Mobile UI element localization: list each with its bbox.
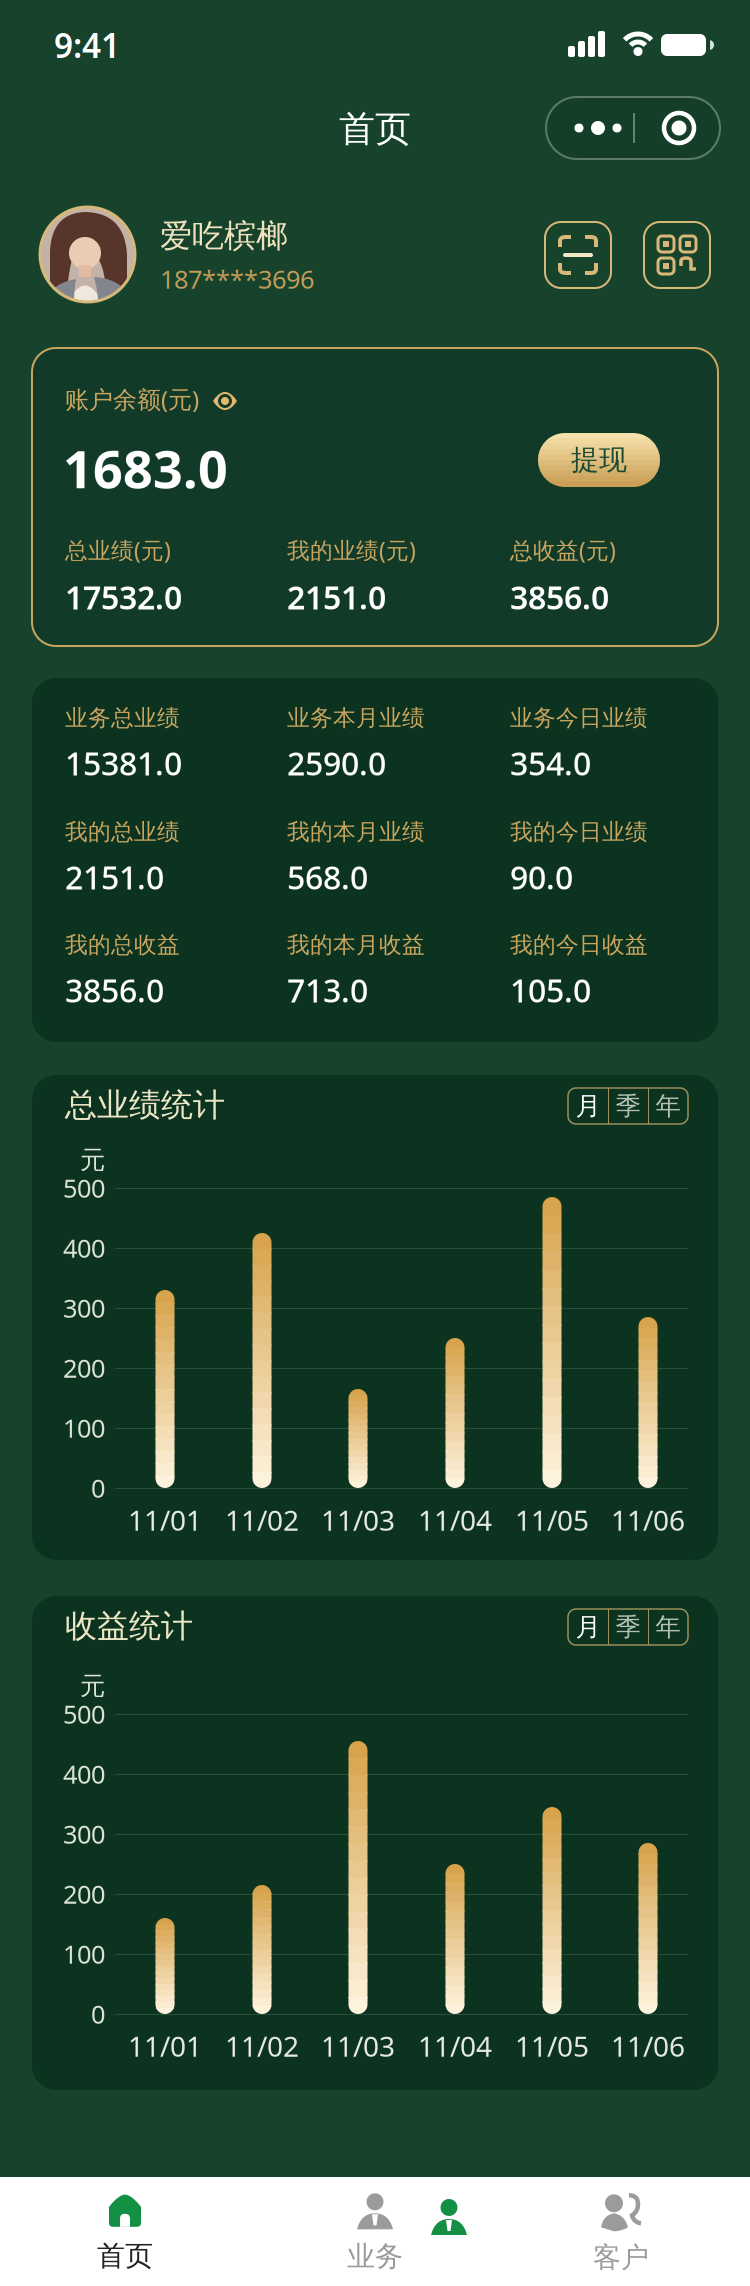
staticText: 3856.0 [510, 576, 609, 618]
staticText: 业务今日业绩 [510, 704, 648, 732]
staticText: 首页 [97, 2239, 153, 2273]
staticText: 2151.0 [287, 576, 386, 618]
staticText: 11/05 [515, 2027, 589, 2065]
staticText: 9:41 [54, 23, 120, 67]
button[interactable]: 月 [568, 1609, 608, 1645]
staticText: 11/02 [225, 2027, 299, 2065]
button[interactable]: 业务 [419, 2187, 479, 2247]
staticText: 11/06 [611, 2027, 685, 2065]
staticText: 11/01 [128, 2027, 202, 2065]
staticText: 100 [63, 1411, 105, 1445]
staticText: 400 [63, 1757, 105, 1791]
staticText: 500 [63, 1171, 105, 1205]
staticText: 我的今日业绩 [510, 818, 648, 846]
staticText: 3856.0 [65, 969, 164, 1011]
staticText: 我的总收益 [65, 931, 180, 959]
button[interactable]: 年 [648, 1088, 688, 1124]
staticText: 业务本月业绩 [287, 704, 425, 732]
staticText: 月 [575, 1090, 600, 1121]
button[interactable]: 首页 [55, 2183, 195, 2283]
staticText: 0 [91, 1471, 105, 1505]
button[interactable]: 更多 [546, 97, 632, 159]
staticText: 11/01 [128, 1501, 202, 1539]
button[interactable]: 提现 [538, 433, 660, 487]
staticText: 11/04 [418, 2027, 492, 2065]
staticText: 2151.0 [65, 856, 164, 898]
staticText: 我的本月收益 [287, 931, 425, 959]
staticText: 0 [91, 1997, 105, 2031]
staticText: 200 [63, 1351, 105, 1385]
staticText: 首页 [339, 107, 411, 151]
button[interactable]: 季 [608, 1609, 648, 1645]
button[interactable]: 客户 [551, 2183, 691, 2283]
staticText: 11/05 [515, 1501, 589, 1539]
staticText: 总收益(元) [510, 535, 616, 565]
staticText: 季 [615, 1090, 640, 1121]
staticText: 354.0 [510, 742, 591, 784]
staticText: 400 [63, 1231, 105, 1265]
staticText: 11/04 [418, 1501, 492, 1539]
staticText: 业务总业绩 [65, 704, 180, 732]
staticText: 季 [615, 1611, 640, 1642]
staticText: 我的今日收益 [510, 931, 648, 959]
staticText: 90.0 [510, 856, 573, 898]
staticText: 1683.0 [63, 433, 228, 503]
staticText: 11/03 [321, 2027, 395, 2065]
staticText: 300 [63, 1291, 105, 1325]
staticText: 爱吃槟榔 [160, 216, 288, 256]
staticText: 105.0 [510, 969, 591, 1011]
staticText: 年 [655, 1611, 680, 1642]
button[interactable]: 扫一扫 [545, 222, 611, 288]
staticText: 200 [63, 1877, 105, 1911]
button[interactable]: 业务 [305, 2183, 445, 2283]
staticText: 我的本月业绩 [287, 818, 425, 846]
button[interactable]: 月 [568, 1088, 608, 1124]
staticText: 500 [63, 1697, 105, 1731]
staticText: 年 [655, 1090, 680, 1121]
staticText: 11/06 [611, 1501, 685, 1539]
staticText: 收益统计 [65, 1606, 193, 1646]
staticText: 568.0 [287, 856, 368, 898]
staticText: 总业绩(元) [65, 535, 171, 565]
button[interactable]: 二维码 [644, 222, 710, 288]
staticText: 300 [63, 1817, 105, 1851]
staticText: 月 [575, 1611, 600, 1642]
staticText: 业务 [347, 2239, 403, 2274]
button[interactable]: 关闭 [635, 97, 720, 159]
staticText: 713.0 [287, 969, 368, 1011]
staticText: 2590.0 [287, 742, 386, 784]
staticText: 元 [80, 1670, 105, 1701]
staticText: 15381.0 [65, 742, 182, 784]
button[interactable]: 季 [608, 1088, 648, 1124]
staticText: 账户余额(元) [65, 383, 199, 415]
staticText: 我的总业绩 [65, 818, 180, 846]
staticText: 客户 [593, 2240, 649, 2275]
staticText: 11/03 [321, 1501, 395, 1539]
staticText: 总业绩统计 [65, 1085, 225, 1125]
button[interactable]: 显示余额 [213, 390, 237, 412]
staticText: 我的业绩(元) [287, 535, 416, 565]
staticText: 11/02 [225, 1501, 299, 1539]
staticText: 元 [80, 1144, 105, 1175]
staticText: 17532.0 [65, 576, 182, 618]
staticText: 187****3696 [160, 262, 314, 296]
staticText: 100 [63, 1937, 105, 1971]
staticText: 提现 [571, 443, 627, 477]
button[interactable]: 年 [648, 1609, 688, 1645]
